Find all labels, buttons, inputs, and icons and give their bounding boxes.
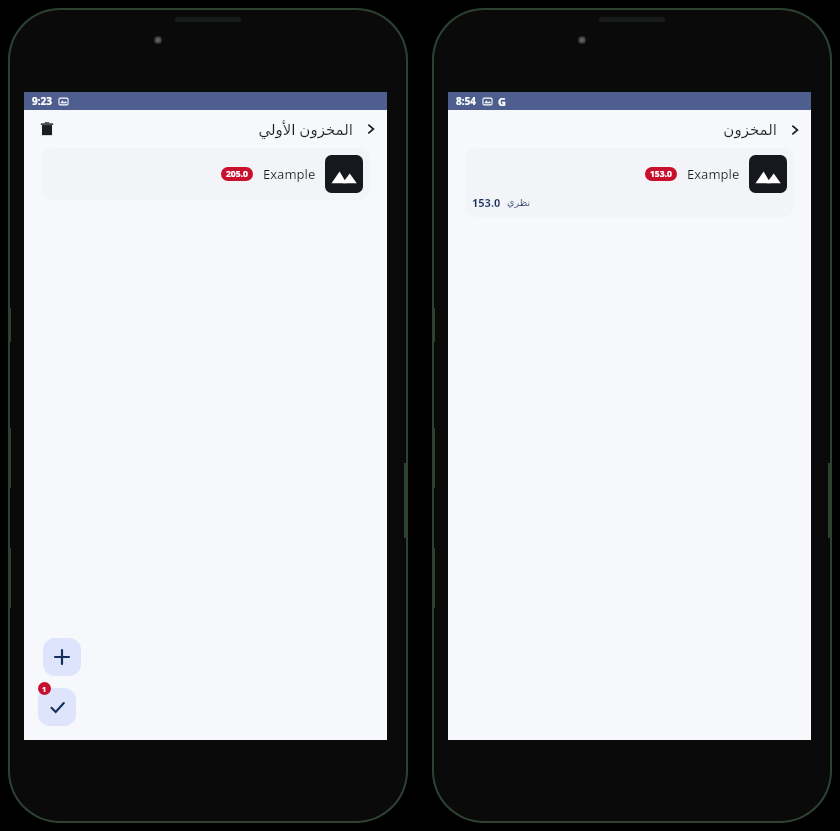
- staticText: المخزون: [723, 121, 777, 138]
- staticText: Example: [687, 165, 740, 183]
- staticText: 8:54: [456, 94, 476, 108]
- button[interactable]: 205.0: [41, 148, 370, 200]
- staticText: G: [498, 94, 506, 109]
- staticText: Example: [263, 165, 316, 183]
- button[interactable]: Delete: [32, 114, 62, 144]
- staticText: 1: [42, 684, 47, 694]
- button[interactable]: 153.0: [465, 148, 794, 217]
- staticText: 153.0: [650, 168, 672, 180]
- staticText: نظري: [507, 197, 531, 208]
- other: Expand: [363, 121, 379, 137]
- staticText: 153.0: [472, 195, 501, 210]
- staticText: 205.0: [226, 168, 248, 180]
- staticText: المخزون الأولي: [258, 119, 353, 139]
- staticText: 9:23: [32, 94, 52, 108]
- button[interactable]: المخزون الأولي: [258, 119, 381, 139]
- other: Expand: [787, 122, 803, 138]
- button[interactable]: Add: [43, 638, 81, 676]
- button[interactable]: المخزون: [723, 121, 805, 138]
- button[interactable]: Confirm: [38, 688, 76, 726]
